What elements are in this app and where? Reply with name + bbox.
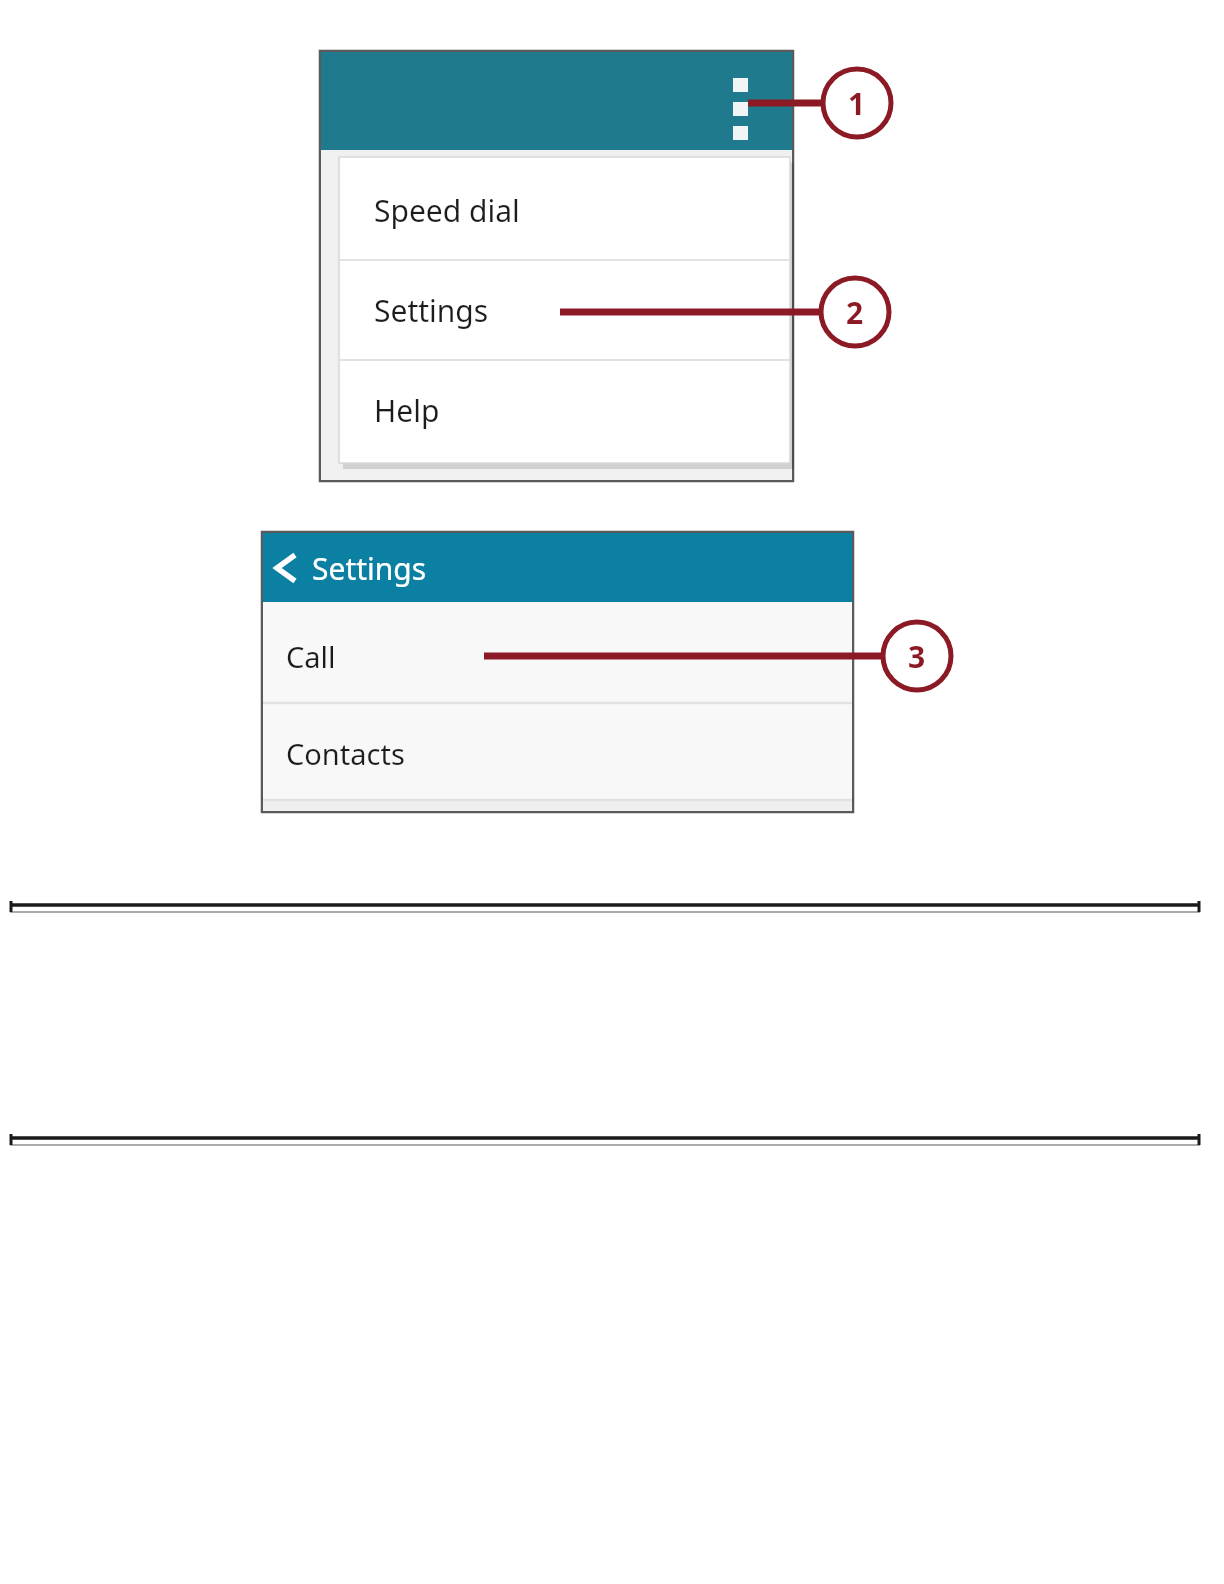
button[interactable] [339,360,790,463]
button[interactable]: Back [262,532,332,602]
button[interactable] [339,157,790,260]
button[interactable] [262,703,853,800]
button[interactable] [262,602,853,703]
button[interactable] [339,260,790,360]
button[interactable]: More options [700,60,780,145]
